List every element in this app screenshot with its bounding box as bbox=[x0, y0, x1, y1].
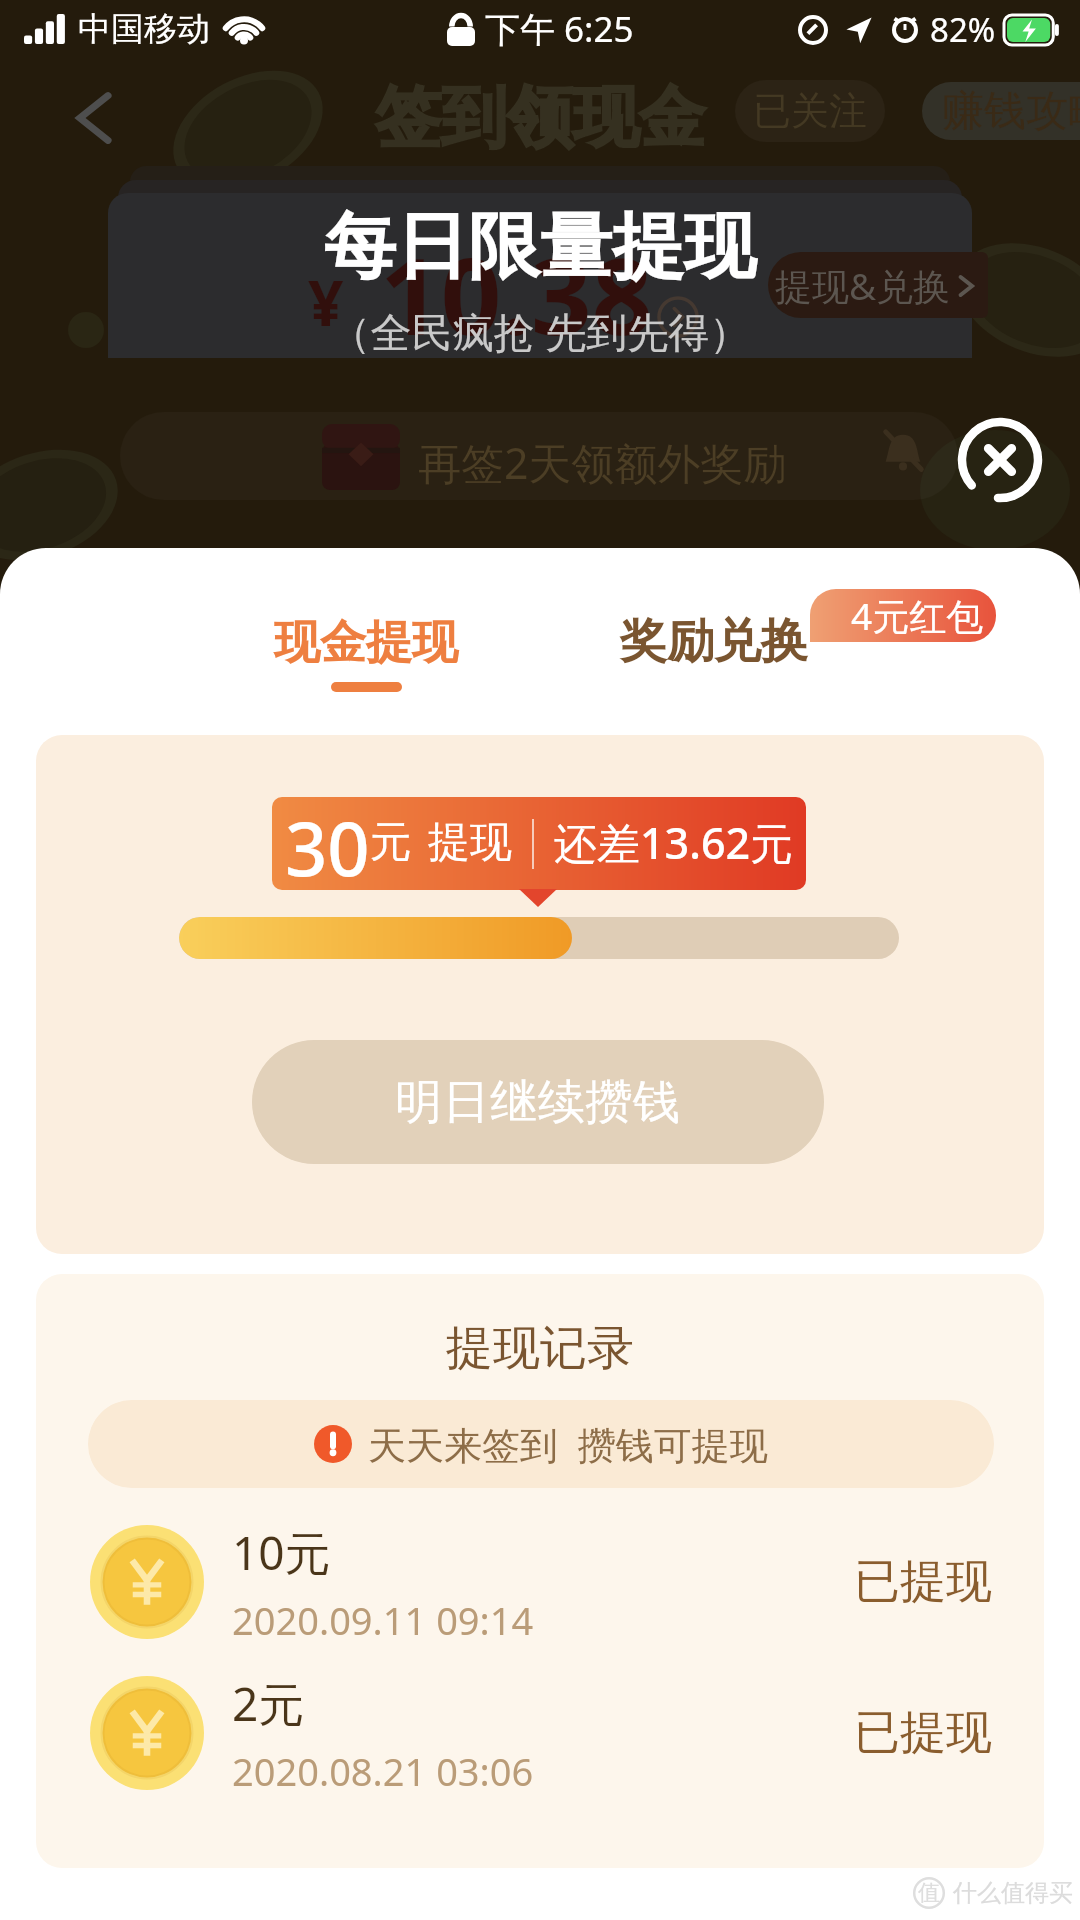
staticText: 值 bbox=[918, 1879, 940, 1907]
staticText: 中国移动 bbox=[78, 8, 210, 50]
staticText: 现金提现 bbox=[274, 614, 458, 672]
button[interactable]: 明日继续攒钱 bbox=[252, 1040, 824, 1164]
button[interactable]: 10元 bbox=[90, 1521, 992, 1643]
staticText: 签到领现金 bbox=[0, 76, 1080, 159]
staticText: （全民疯抢 先到先得） bbox=[0, 303, 1080, 359]
staticText: 2020.08.21 03:06 bbox=[232, 1745, 534, 1794]
staticText: 2020.09.11 09:14 bbox=[232, 1594, 534, 1643]
button[interactable]: 奖励兑换 bbox=[620, 612, 808, 671]
staticText: 还差13.62元 bbox=[554, 813, 794, 872]
staticText: 已提现 bbox=[854, 1553, 992, 1611]
staticText: ¥ bbox=[308, 260, 344, 344]
staticText: 赚钱攻略 bbox=[942, 85, 1080, 138]
staticText: 已关注 bbox=[753, 87, 867, 135]
staticText: 10.38 bbox=[380, 222, 653, 366]
staticText: 天天来签到 攒钱可提现 bbox=[368, 1418, 768, 1470]
staticText: 什么值得买 bbox=[953, 1878, 1073, 1908]
staticText: 明日继续攒钱 bbox=[395, 1073, 681, 1132]
button[interactable]: 2元 bbox=[90, 1672, 992, 1794]
staticText: 元 bbox=[370, 816, 412, 869]
staticText: 提现 bbox=[428, 816, 512, 869]
staticText: 提现记录 bbox=[36, 1319, 1044, 1378]
staticText: 30 bbox=[285, 797, 370, 890]
staticText: 下午 6:25 bbox=[485, 5, 634, 53]
button[interactable]: Close bbox=[957, 417, 1043, 503]
staticText: 再签2天领额外奖励 bbox=[418, 433, 787, 492]
staticText: 82% bbox=[930, 7, 996, 52]
staticText: 提现&兑换 bbox=[775, 260, 951, 311]
staticText: 10元 bbox=[232, 1521, 331, 1584]
staticText: 4元红包 bbox=[851, 590, 984, 641]
staticText: 2元 bbox=[232, 1672, 305, 1735]
button[interactable]: 现金提现 bbox=[258, 614, 474, 692]
staticText: 每日限量提现 bbox=[0, 202, 1080, 293]
staticText: 奖励兑换 bbox=[620, 612, 808, 671]
staticText: 已提现 bbox=[854, 1704, 992, 1762]
